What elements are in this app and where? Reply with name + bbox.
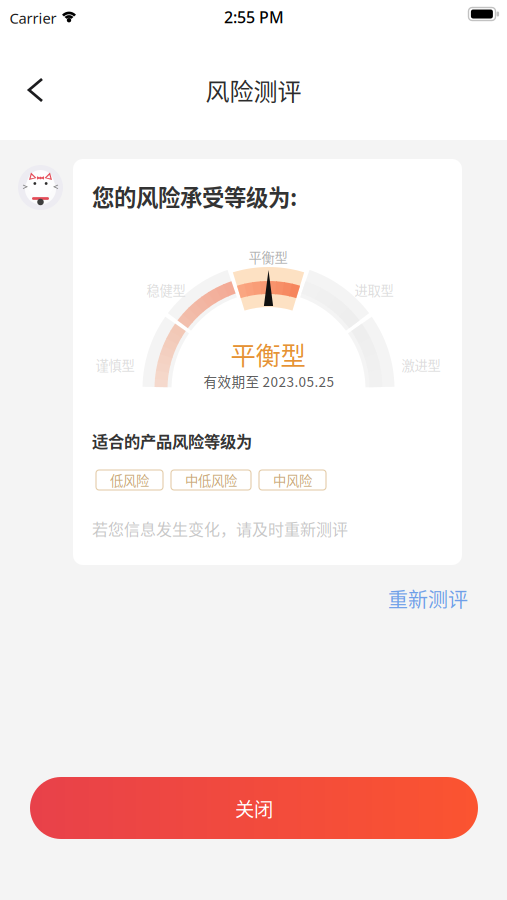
staticText: 若您信息发生变化，请及时重新测评 bbox=[92, 517, 348, 540]
staticText: 重新测评 bbox=[388, 584, 468, 613]
staticText: 适合的产品风险等级为 bbox=[92, 429, 252, 453]
staticText: 2:55 PM bbox=[224, 6, 284, 28]
staticText: 中低风险 bbox=[185, 470, 237, 490]
staticText: 中风险 bbox=[273, 470, 312, 490]
staticText: 低风险 bbox=[110, 470, 149, 490]
staticText: 您的风险承受等级为: bbox=[92, 180, 297, 212]
staticText: Carrier bbox=[9, 8, 56, 28]
staticText: 谨慎型 bbox=[95, 355, 134, 375]
staticText: 平衡型 bbox=[248, 247, 287, 267]
staticText: 进取型 bbox=[354, 280, 393, 300]
staticText: 风险测评 bbox=[205, 73, 301, 107]
staticText: 激进型 bbox=[401, 355, 440, 375]
staticText: 关闭 bbox=[235, 794, 273, 822]
staticText: 平衡型 bbox=[230, 336, 305, 372]
staticText: 稳健型 bbox=[146, 280, 185, 300]
staticText: 有效期至 2023.05.25 bbox=[203, 371, 334, 391]
button[interactable]: Back bbox=[0, 64, 72, 116]
button[interactable]: 重新测评 bbox=[378, 577, 478, 620]
button[interactable]: 关闭 bbox=[30, 777, 478, 839]
